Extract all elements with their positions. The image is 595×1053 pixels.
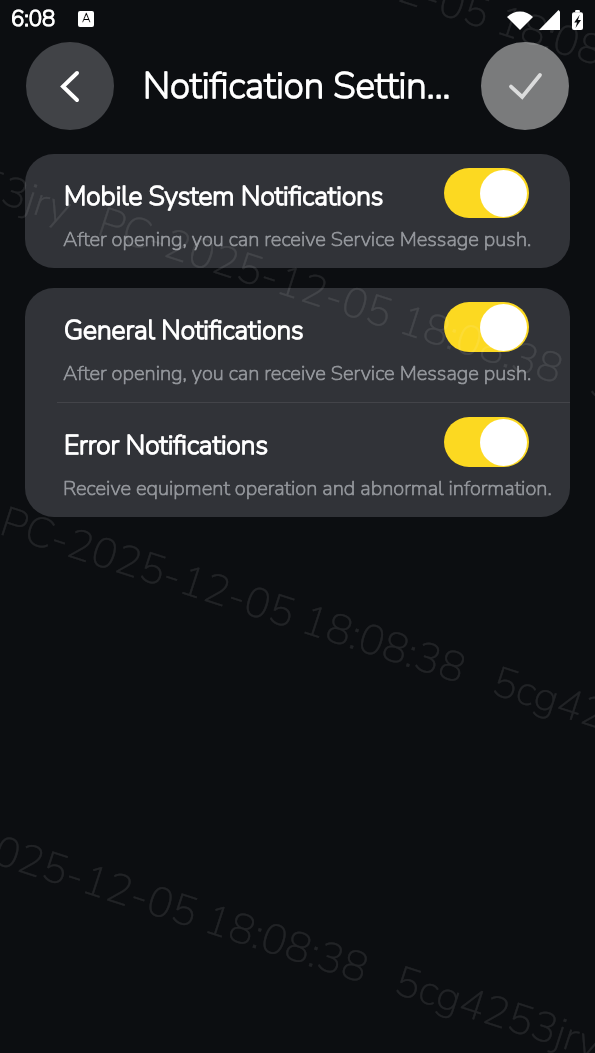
button[interactable]: General Notifications: [25, 288, 570, 402]
staticText: A: [82, 11, 91, 26]
staticText: Error Notifications: [64, 427, 269, 463]
staticText: After opening, you can receive Service M…: [63, 226, 532, 254]
button[interactable]: Mobile System Notifications: [25, 154, 570, 268]
staticText: 6:08: [11, 4, 56, 34]
staticText: PC-2025-12-05 18:08:38 5cg4253jry PC-202…: [0, 0, 595, 239]
staticText: Error Notifications: [64, 427, 269, 463]
staticText: 6:08: [11, 4, 56, 34]
staticText: After opening, you can receive Service M…: [63, 360, 532, 388]
staticText: Receive equipment operation and abnormal…: [63, 475, 552, 503]
staticText: After opening, you can receive Service M…: [63, 226, 532, 254]
staticText: Receive equipment operation and abnormal…: [63, 475, 552, 503]
button[interactable]: Toggle: [444, 417, 529, 467]
staticText: Mobile System Notifications: [64, 178, 384, 214]
staticText: PC-2025-12-05 18:08:38 5cg4253jry PC-202…: [0, 857, 595, 1053]
staticText: PC-2025-12-05 18:08:38 5cg4253jry PC-202…: [0, 0, 595, 538]
staticText: General Notifications: [64, 312, 304, 348]
staticText: After opening, you can receive Service M…: [63, 360, 532, 388]
staticText: Notification Settin...: [143, 61, 451, 111]
button[interactable]: Confirm: [481, 42, 569, 130]
staticText: PC-2025-12-05 18:08:38 5cg4253jry PC-202…: [0, 258, 595, 838]
staticText: Notification Settin...: [143, 61, 451, 111]
button[interactable]: Error Notifications: [25, 403, 570, 517]
button[interactable]: Toggle: [444, 168, 529, 218]
staticText: Mobile System Notifications: [64, 178, 384, 214]
staticText: General Notifications: [64, 312, 304, 348]
button[interactable]: Back: [26, 42, 114, 130]
button[interactable]: Toggle: [444, 302, 529, 352]
